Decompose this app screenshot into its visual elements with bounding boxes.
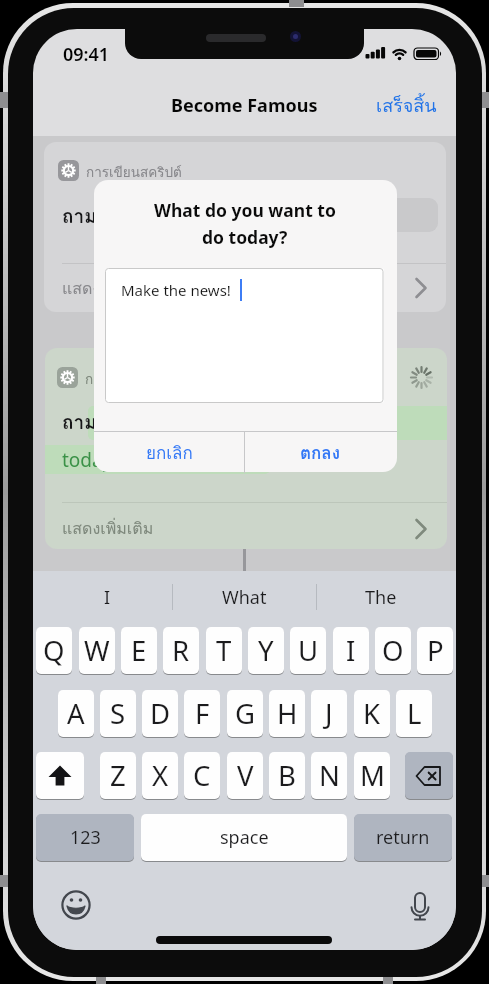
staticText: R [172,632,190,669]
staticText: I [104,585,111,610]
staticText: 123 [70,825,101,850]
button[interactable]: X [142,752,178,799]
staticText: E [131,632,147,669]
button[interactable]: A [58,690,94,737]
staticText: Become Famous [171,93,318,118]
staticText: return [376,825,430,850]
button[interactable]: The [231,575,456,619]
button[interactable]: G [227,690,263,737]
staticText: แสดงเพิ่มเติม [62,516,154,541]
staticText: การเขียนสคริปต์ [86,161,182,182]
staticText: การเขียนสคริปต์ [85,368,181,389]
staticText: X [152,757,169,794]
staticText: T [216,632,232,669]
staticText: A [67,695,85,732]
button[interactable]: F [184,690,220,737]
staticText: M [360,757,385,794]
button[interactable]: 123 [36,814,134,861]
staticText: today? [62,447,122,473]
button[interactable]: H [269,690,305,737]
button[interactable]: J [311,690,347,737]
staticText: N [319,757,340,794]
staticText: J [325,695,333,732]
button[interactable]: C [184,752,220,799]
staticText: L [407,695,422,732]
button[interactable]: I [33,575,257,619]
staticText: C [193,757,211,794]
button[interactable]: return [354,814,452,861]
staticText: P [427,632,444,669]
staticText: D [150,695,171,732]
button[interactable]: T [206,627,242,674]
staticText: S [110,695,126,732]
staticText: แสดงเพิ่มเติม [62,276,154,301]
staticText: What do you want to [154,198,336,222]
button[interactable]: I [333,627,369,674]
button[interactable]: Y [248,627,284,674]
button[interactable]: B [269,752,305,799]
staticText: Make the news! [121,280,231,300]
button[interactable]: K [354,690,390,737]
staticText: ถาม [62,407,97,437]
button[interactable] [245,432,395,473]
button[interactable]: N [311,752,347,799]
button[interactable] [94,432,244,473]
button[interactable]: S [100,690,136,737]
button[interactable]: E [121,627,157,674]
button[interactable]: D [142,690,178,737]
staticText: space [220,825,269,850]
staticText: ยกเลิก [146,439,193,466]
staticText: V [237,757,254,794]
staticText: 09:41 [63,42,110,67]
staticText: เสร็จสิ้น [376,91,437,120]
button[interactable]: M [354,752,390,799]
staticText: W [84,632,110,669]
staticText: Q [43,632,65,669]
button[interactable]: เสร็จสิ้น [256,83,456,127]
staticText: I [346,632,356,669]
staticText: H [277,695,298,732]
staticText: B [278,757,296,794]
button[interactable]: V [227,752,263,799]
staticText: U [298,632,319,669]
button[interactable]: What [94,575,394,619]
button[interactable]: space [141,814,347,861]
button[interactable] [45,502,447,549]
staticText: K [363,695,381,732]
staticText: F [195,695,210,732]
staticText: Z [110,757,126,794]
staticText: ถาม [62,201,97,231]
button[interactable]: Z [100,752,136,799]
staticText: G [235,695,256,732]
button[interactable]: W [79,627,115,674]
button[interactable] [36,752,84,799]
staticText: What [222,585,267,610]
staticText: ตกลง [300,439,341,466]
button[interactable]: U [290,627,326,674]
button[interactable]: Q [36,627,72,674]
button[interactable] [405,752,453,799]
button[interactable] [60,889,92,921]
button[interactable]: R [163,627,199,674]
button[interactable]: L [396,690,432,737]
staticText: The [365,585,397,610]
staticText: Y [258,632,274,669]
button[interactable]: P [417,627,453,674]
staticText: O [382,632,404,669]
staticText: do today? [202,225,288,249]
button[interactable] [44,263,446,312]
button[interactable] [406,888,434,924]
button[interactable]: O [375,627,411,674]
